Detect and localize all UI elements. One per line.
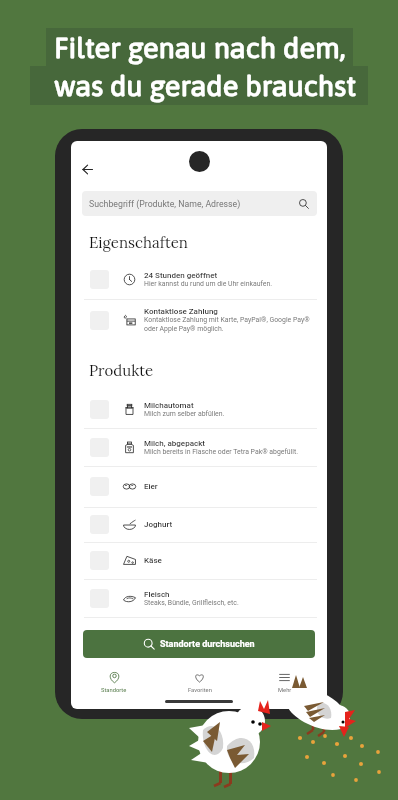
staticText: Standorte (101, 687, 127, 694)
staticText: Hier kannst du rund um die Uhr einkaufen… (144, 280, 273, 288)
button[interactable]: Standorte (71, 669, 157, 695)
button[interactable]: 24 Stunden geöffnet (71, 259, 327, 299)
staticText: Milchautomat (144, 401, 194, 410)
staticText: Fleisch (144, 590, 170, 599)
button[interactable]: Suchbegriff (Produkte, Name, Adresse) (82, 191, 317, 216)
button[interactable]: Favoriten (157, 669, 242, 695)
button[interactable]: Standorte durchsuchen (83, 630, 315, 658)
staticText: was du gerade brauchst (54, 69, 357, 102)
staticText: Kontaktlose Zahlung (144, 307, 218, 316)
staticText: Kontaktlose Zahlung mit Karte, PayPal®, … (144, 316, 310, 333)
button[interactable]: Milch, abgepackt (71, 428, 327, 466)
staticText: 24 Stunden geöffnet (144, 271, 218, 280)
staticText: Joghurt (144, 520, 173, 529)
staticText: Standorte durchsuchen (160, 639, 255, 650)
staticText: Favoriten (188, 687, 212, 694)
button[interactable]: Joghurt (71, 507, 327, 542)
button[interactable]: Fleisch (71, 579, 327, 617)
button[interactable]: Käse (71, 542, 327, 579)
staticText: Milch bereits in Flasche oder Tetra Pak®… (144, 448, 299, 456)
staticText: Milch, abgepackt (144, 439, 206, 448)
staticText: Eigenschaften (89, 233, 188, 252)
staticText: Filter genau nach dem, (54, 31, 346, 64)
staticText: Milch zum selber abfüllen. (144, 410, 225, 418)
button[interactable]: Mehr (242, 669, 327, 695)
button[interactable]: Eier (71, 466, 327, 507)
staticText: Produkte (89, 361, 154, 380)
button[interactable]: Kontaktlose Zahlung (71, 299, 327, 341)
staticText: Eier (144, 482, 158, 491)
button[interactable]: Milchautomat (71, 390, 327, 428)
staticText: Steaks, Bündle, Grillfleisch, etc. (144, 599, 239, 607)
button[interactable]: Zurück (75, 157, 100, 182)
staticText: Mehr (278, 687, 292, 694)
staticText: Käse (144, 556, 162, 565)
staticText: Suchbegriff (Produkte, Name, Adresse) (89, 199, 241, 209)
